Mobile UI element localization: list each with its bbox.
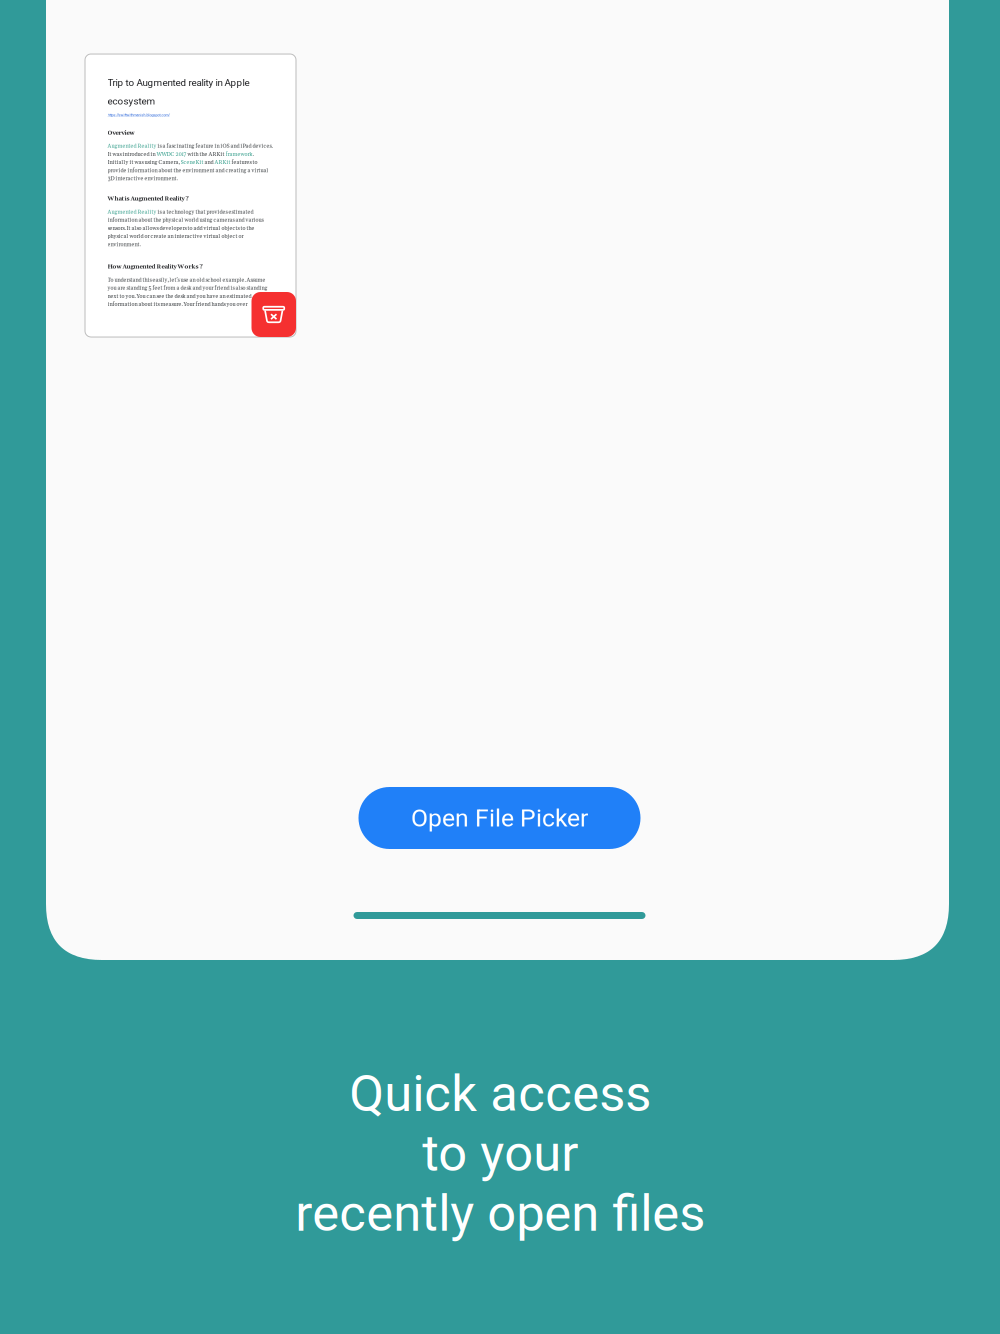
staticText: recently open files <box>295 1184 705 1243</box>
button[interactable]: Delete file <box>251 292 296 337</box>
staticText: Trip to Augmented reality in Apple <box>107 77 249 88</box>
staticText: Overview <box>107 129 134 137</box>
button[interactable]: Open File Picker <box>358 787 640 849</box>
staticText: Augmented Reality is a fascinating featu… <box>107 143 272 182</box>
staticText: ecosystem <box>107 95 155 107</box>
staticText: Quick access <box>349 1064 651 1123</box>
staticText: to your <box>422 1124 578 1183</box>
staticText: How Augmented Reality Works ? <box>107 263 202 270</box>
staticText: What is Augmented Reality ? <box>107 195 188 203</box>
staticText: To understand this easily, let's use an … <box>107 277 267 308</box>
staticText: Open File Picker <box>411 803 588 832</box>
staticText: Augmented Reality is a technology that p… <box>107 209 263 248</box>
staticText: https://swiftwithmanish.blogspot.com/ <box>107 113 169 117</box>
